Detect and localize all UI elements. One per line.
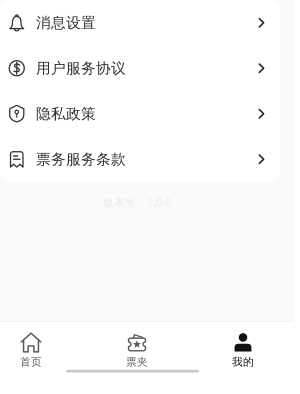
staticText: 首页	[20, 355, 42, 369]
staticText: 版本号：1.0.0	[103, 195, 171, 209]
staticText: 票务服务条款	[36, 150, 126, 168]
button[interactable]: 票夹	[117, 333, 157, 369]
button[interactable]: 消息设置	[0, 0, 280, 45]
staticText: 票夹	[126, 355, 148, 369]
button[interactable]: 首页	[11, 333, 51, 369]
button[interactable]: 我的	[223, 333, 263, 369]
button[interactable]: 用户服务协议	[0, 45, 280, 91]
staticText: 消息设置	[36, 14, 96, 32]
staticText: 用户服务协议	[36, 59, 126, 77]
staticText: 隐私政策	[36, 105, 96, 123]
button[interactable]: 隐私政策	[0, 91, 280, 136]
button[interactable]: 票务服务条款	[0, 136, 280, 182]
staticText: 我的	[232, 355, 254, 369]
